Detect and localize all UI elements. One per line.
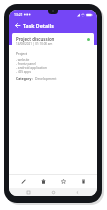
staticText: 14/08/2021 | 01:10:00 am xyxy=(16,42,53,46)
button[interactable]: Edit xyxy=(17,175,29,187)
staticText: Project xyxy=(16,51,28,56)
staticText: 13:21 xyxy=(14,12,23,17)
staticText: Task Details xyxy=(23,22,54,29)
button[interactable]: Favorite xyxy=(57,175,69,187)
staticText: Development xyxy=(35,76,57,81)
staticText: Project discussion xyxy=(16,36,55,42)
staticText: - website - frontz panel - android appli… xyxy=(16,58,47,74)
button[interactable]: Archive xyxy=(77,175,89,187)
button[interactable]: Delete xyxy=(37,175,49,187)
button[interactable]: Back xyxy=(12,20,22,30)
staticText: Category : xyxy=(16,76,35,81)
